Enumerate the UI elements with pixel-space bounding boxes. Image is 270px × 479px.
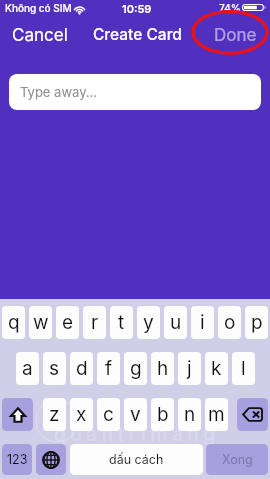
button[interactable]: l xyxy=(232,352,255,385)
staticText: i xyxy=(200,311,205,334)
staticText: f xyxy=(105,357,113,380)
staticText: j xyxy=(187,357,192,380)
button[interactable]: v xyxy=(124,398,147,431)
button[interactable]: k xyxy=(205,352,228,385)
staticText: k xyxy=(211,357,222,380)
staticText: 123 xyxy=(7,452,28,467)
button[interactable]: 123 xyxy=(2,444,32,475)
staticText: v xyxy=(130,403,141,426)
button[interactable]: c xyxy=(97,398,120,431)
staticText: m xyxy=(208,403,225,426)
staticText: Type away... xyxy=(20,84,98,100)
staticText: Cancel xyxy=(12,25,68,43)
button[interactable]: e xyxy=(56,306,79,339)
staticText: dấu cách xyxy=(109,452,164,467)
staticText: z xyxy=(49,403,60,426)
button[interactable]: q xyxy=(2,306,25,339)
staticText: Xong xyxy=(222,452,253,467)
staticText: q xyxy=(8,311,20,334)
button[interactable]: j xyxy=(178,352,201,385)
staticText: 10:59 xyxy=(122,2,152,15)
staticText: d xyxy=(76,357,88,380)
staticText: n xyxy=(184,403,196,426)
staticText: quantrimang xyxy=(54,423,220,446)
staticText: w xyxy=(33,311,49,334)
staticText: u xyxy=(170,311,182,334)
button[interactable]: p xyxy=(245,306,268,339)
button[interactable]: x xyxy=(70,398,93,431)
staticText: l xyxy=(241,357,246,380)
button[interactable]: b xyxy=(151,398,174,431)
staticText: o xyxy=(224,311,236,334)
button[interactable]: Cancel xyxy=(6,21,74,47)
staticText: g xyxy=(130,357,142,380)
button[interactable]: dấu cách xyxy=(70,444,203,475)
staticText: r xyxy=(91,311,99,334)
button[interactable]: h xyxy=(151,352,174,385)
button[interactable]: f xyxy=(97,352,120,385)
staticText: 74% xyxy=(219,2,241,14)
staticText: a xyxy=(22,357,33,380)
button[interactable]: u xyxy=(164,306,187,339)
button[interactable]: i xyxy=(191,306,214,339)
button[interactable]: a xyxy=(16,352,39,385)
staticText: h xyxy=(157,357,169,380)
button[interactable]: g xyxy=(124,352,147,385)
button[interactable]: d xyxy=(70,352,93,385)
staticText: s xyxy=(49,357,60,380)
staticText: Không có SIM xyxy=(5,2,72,14)
button[interactable]: Shift xyxy=(2,398,33,431)
staticText: x xyxy=(76,403,87,426)
button[interactable]: Type away... xyxy=(9,74,261,110)
button[interactable]: Xong xyxy=(206,444,268,475)
button[interactable]: o xyxy=(218,306,241,339)
staticText: Create Card xyxy=(93,25,182,44)
button[interactable]: z xyxy=(43,398,66,431)
staticText: y xyxy=(143,311,154,334)
button[interactable]: Done xyxy=(208,21,263,47)
button[interactable]: r xyxy=(83,306,106,339)
button[interactable]: w xyxy=(29,306,52,339)
staticText: e xyxy=(62,311,74,334)
button[interactable]: Backspace xyxy=(237,398,268,431)
button[interactable]: y xyxy=(137,306,160,339)
button[interactable]: Change keyboard xyxy=(36,444,66,475)
staticText: Done xyxy=(214,25,257,43)
button[interactable]: t xyxy=(110,306,133,339)
button[interactable]: m xyxy=(205,398,228,431)
staticText: t xyxy=(118,311,125,334)
staticText: p xyxy=(251,311,263,334)
button[interactable]: n xyxy=(178,398,201,431)
staticText: b xyxy=(157,403,169,426)
button[interactable]: s xyxy=(43,352,66,385)
staticText: c xyxy=(103,403,114,426)
